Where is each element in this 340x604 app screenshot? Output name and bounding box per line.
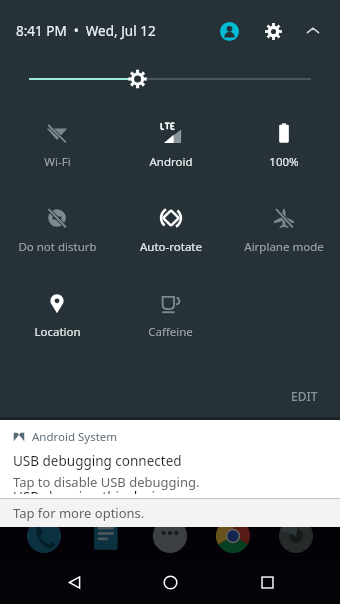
button[interactable]: Do not disturb <box>0 193 114 278</box>
button[interactable]: Location <box>0 278 114 363</box>
staticText: 8:41 PM • Wed, Jul 12 <box>16 22 156 40</box>
staticText: Tap for more options. <box>13 504 145 522</box>
button[interactable]: Android System <box>0 420 340 492</box>
staticText: 100% <box>269 154 299 170</box>
button[interactable]: USB charging this device <box>0 492 340 527</box>
button[interactable]: Wi-Fi <box>0 108 114 193</box>
button[interactable]: Android <box>114 108 227 193</box>
button[interactable]: Back <box>51 560 97 604</box>
staticText: Do not disturb <box>18 239 97 255</box>
button[interactable]: Collapse <box>298 16 328 46</box>
staticText: Android System <box>32 429 118 445</box>
staticText: Location <box>34 324 81 340</box>
button[interactable]: Recent apps <box>244 560 290 604</box>
button[interactable]: Brightness <box>0 62 340 96</box>
staticText: EDIT <box>291 388 318 404</box>
staticText: USB charging this device <box>13 488 170 494</box>
staticText: Tap to disable USB debugging. <box>13 473 200 491</box>
staticText: USB debugging connected <box>13 452 182 470</box>
staticText: Wi-Fi <box>44 154 71 170</box>
button[interactable]: User account <box>214 16 244 46</box>
staticText: Airplane mode <box>244 239 324 255</box>
button[interactable]: 100% <box>227 108 340 193</box>
button[interactable]: Auto-rotate <box>114 193 227 278</box>
button[interactable]: Settings <box>258 16 288 46</box>
button[interactable]: Caffeine <box>114 278 227 363</box>
staticText: Caffeine <box>148 324 193 340</box>
button[interactable]: Home <box>147 560 193 604</box>
staticText: Auto-rotate <box>140 239 202 255</box>
button[interactable]: EDIT <box>281 382 328 410</box>
staticText: Android <box>149 154 193 170</box>
button[interactable]: Airplane mode <box>227 193 340 278</box>
